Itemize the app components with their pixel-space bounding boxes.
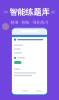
staticText: 智能练题库 bbox=[9, 7, 49, 17]
staticText: ≪ bbox=[50, 9, 56, 15]
staticText: ≫ bbox=[3, 9, 9, 15]
staticText: 精准 · 智能 · 强化练习 bbox=[10, 19, 48, 25]
